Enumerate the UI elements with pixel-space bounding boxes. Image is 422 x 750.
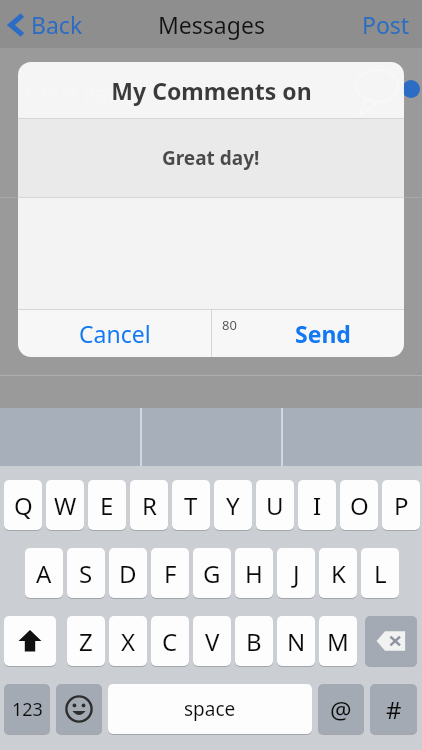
staticText: Cancel [79,318,151,349]
staticText: O [350,489,369,522]
button[interactable]: B [235,616,273,666]
button[interactable]: U [256,480,294,530]
staticText: Y [226,489,240,522]
staticText: Great day! [26,80,123,107]
staticText: Q [14,489,33,522]
staticText: W [54,489,77,522]
button[interactable]: E [88,480,126,530]
button[interactable]: D [109,548,147,598]
button[interactable]: space [108,684,312,734]
button[interactable]: Post [362,9,410,40]
staticText: E [100,489,114,522]
staticText: Post [362,9,410,40]
staticText: T [184,489,198,522]
button[interactable]: O [340,480,378,530]
staticText: H [245,557,263,590]
button[interactable]: Z [67,616,105,666]
staticText: Back [31,9,83,40]
staticText: C [162,625,178,658]
button[interactable]: Shift [4,616,56,666]
button[interactable]: J [277,548,315,598]
staticText: # [386,693,402,726]
button[interactable]: M [319,616,357,666]
staticText: space [184,696,236,722]
button[interactable]: N [277,616,315,666]
button[interactable]: L [361,548,399,598]
staticText: D [119,557,137,590]
staticText: I [313,489,322,522]
button[interactable]: Backspace [365,616,417,666]
button[interactable]: C [151,616,189,666]
staticText: 123 [12,697,43,722]
button[interactable]: # [370,684,417,734]
button[interactable]: Cancel [18,310,211,357]
staticText: M [327,625,349,658]
staticText: U [266,489,284,522]
button[interactable]: Emoji [56,684,102,734]
button[interactable]: Y [214,480,252,530]
button[interactable]: 123 [4,684,50,734]
staticText: A [36,557,52,590]
staticText: J [293,557,300,590]
staticText: @ [330,693,352,726]
button[interactable]: X [109,616,147,666]
staticText: F [164,557,177,590]
button[interactable]: W [46,480,84,530]
button[interactable]: H [235,548,273,598]
staticText: Z [79,625,93,658]
button[interactable]: Q [4,480,42,530]
button[interactable]: R [130,480,168,530]
staticText: R [142,489,157,522]
button[interactable]: P [382,480,420,530]
button[interactable]: 80 [212,310,404,357]
button[interactable]: A [25,548,63,598]
button[interactable]: V [193,616,231,666]
staticText: Messages [158,9,265,40]
staticText: S [79,557,93,590]
staticText: K [331,557,346,590]
button[interactable]: G [193,548,231,598]
staticText: B [246,625,262,658]
staticText: My Comments on [111,75,312,106]
button[interactable]: F [151,548,189,598]
staticText: Send [295,318,351,349]
button[interactable]: S [67,548,105,598]
staticText: X [121,625,136,658]
staticText: N [287,625,306,658]
staticText: V [205,625,220,658]
staticText: G [203,557,221,590]
button[interactable]: T [172,480,210,530]
button[interactable]: Back [8,9,83,40]
button[interactable]: K [319,548,357,598]
staticText: P [394,489,409,522]
button[interactable]: I [298,480,336,530]
button[interactable]: @ [318,684,364,734]
staticText: Great day! [162,145,260,171]
staticText: L [374,557,387,590]
staticText: 80 [222,316,237,334]
